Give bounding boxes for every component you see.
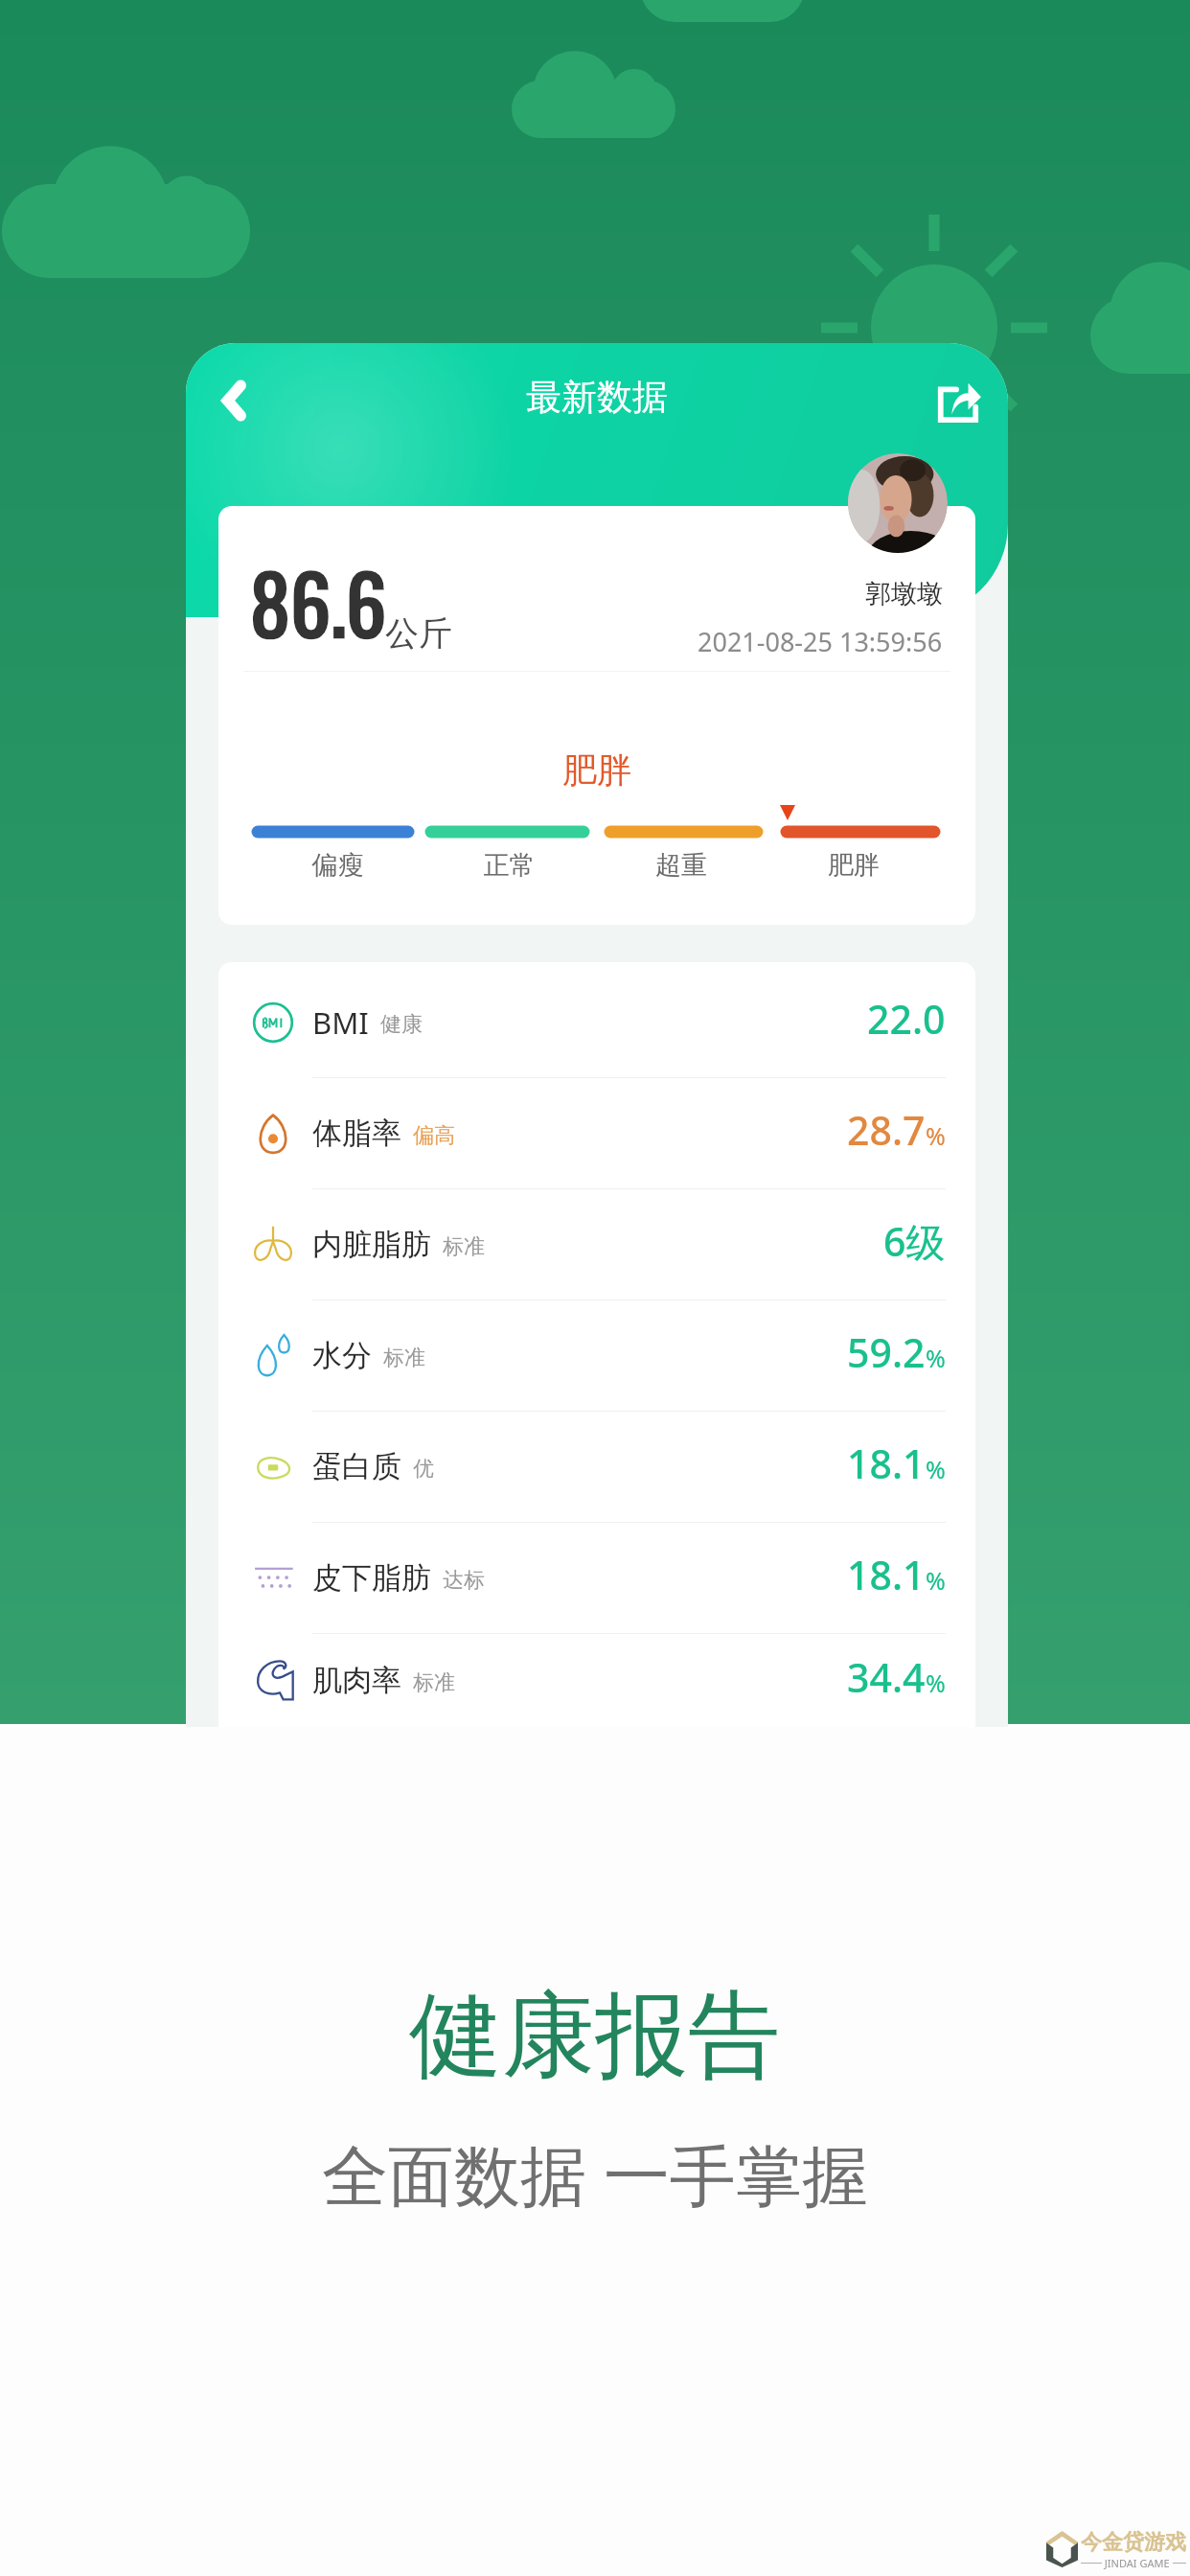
staticText: 今金贷游戏 <box>1081 2529 1186 2556</box>
staticText: 肥胖 <box>562 748 631 792</box>
button[interactable]: Share <box>935 378 981 424</box>
staticText: 达标 <box>443 1567 485 1594</box>
staticText: 22.0 <box>867 992 946 1046</box>
staticText: 肌肉率 <box>312 1662 401 1699</box>
staticText: 体脂率 <box>312 1115 401 1152</box>
staticText: 标准 <box>383 1345 425 1371</box>
staticText: 内脏脂肪 <box>312 1226 431 1263</box>
staticText: % <box>926 1119 946 1152</box>
staticText: 肥胖 <box>767 849 940 882</box>
button[interactable]: Back <box>199 366 268 435</box>
staticText: % <box>926 1564 946 1597</box>
staticText: 偏瘦 <box>252 849 423 882</box>
staticText: 健康 <box>380 1011 423 1038</box>
staticText: 18.1 <box>847 1437 926 1490</box>
staticText: 标准 <box>443 1233 485 1260</box>
staticText: % <box>926 1342 946 1374</box>
button[interactable]: 肌肉率 <box>218 1634 975 1727</box>
staticText: % <box>926 1453 946 1485</box>
staticText: 正常 <box>423 849 595 882</box>
staticText: 全面数据 一手掌握 <box>322 2128 868 2219</box>
staticText: 6级 <box>883 1214 946 1268</box>
staticText: JINDAI GAME <box>1102 2556 1173 2570</box>
staticText: 皮下脂肪 <box>312 1559 431 1597</box>
staticText: 水分 <box>312 1337 372 1374</box>
staticText: 优 <box>413 1456 434 1483</box>
staticText: 蛋白质 <box>312 1448 401 1485</box>
staticText: 28.7 <box>847 1103 926 1157</box>
staticText: 郭墩墩 <box>865 578 943 610</box>
staticText: 2021-08-25 13:59:56 <box>698 624 943 659</box>
staticText: 偏高 <box>413 1122 455 1149</box>
button[interactable]: 体脂率 <box>218 1078 975 1189</box>
staticText: BMI <box>312 1002 369 1043</box>
staticText: 最新数据 <box>526 375 668 420</box>
button[interactable]: 蛋白质 <box>218 1412 975 1523</box>
staticText: 超重 <box>595 849 767 882</box>
button[interactable]: Profile photo <box>848 453 948 553</box>
button[interactable]: BMI <box>218 967 975 1078</box>
staticText: 标准 <box>413 1669 455 1696</box>
staticText: 健康报告 <box>409 1978 781 2095</box>
button[interactable]: 皮下脂肪 <box>218 1523 975 1634</box>
staticText: 公斤 <box>385 612 452 655</box>
staticText: % <box>926 1667 946 1699</box>
staticText: 18.1 <box>847 1548 926 1601</box>
button[interactable]: 内脏脂肪 <box>218 1189 975 1300</box>
button[interactable]: 水分 <box>218 1300 975 1412</box>
staticText: 59.2 <box>847 1325 926 1379</box>
staticText: 34.4 <box>847 1650 926 1704</box>
staticText: 86.6 <box>250 541 387 660</box>
